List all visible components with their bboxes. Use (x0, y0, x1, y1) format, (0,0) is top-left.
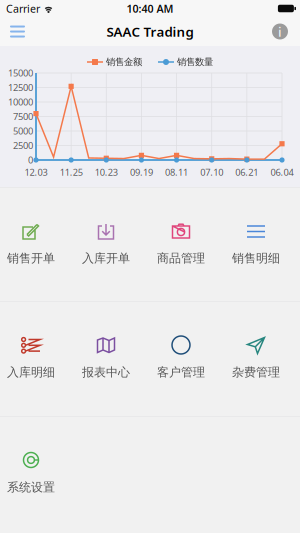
button[interactable]: Info (262, 18, 298, 44)
staticText: 10.23 (95, 166, 118, 178)
staticText: 07.10 (200, 166, 223, 178)
button[interactable]: 报表中心 (75, 301, 150, 416)
staticText: 入库明细 (7, 365, 55, 380)
staticText: SAAC Trading (106, 23, 193, 40)
staticText: 销售开单 (7, 251, 55, 266)
button[interactable]: Menu (2, 18, 33, 44)
button[interactable]: 销售开单 (0, 187, 75, 301)
button[interactable]: 系统设置 (0, 416, 75, 530)
staticText: 12.03 (24, 166, 47, 178)
staticText: 系统设置 (7, 480, 55, 495)
staticText: i (278, 23, 282, 40)
staticText: 客户管理 (157, 365, 205, 380)
button[interactable]: 商品管理 (150, 187, 225, 301)
button[interactable]: 销售明细 (225, 187, 300, 301)
button[interactable]: 入库明细 (0, 301, 75, 416)
staticText: 11.25 (60, 166, 83, 178)
staticText: 08.11 (165, 166, 188, 178)
staticText: 12500 (8, 81, 33, 94)
staticText: 销售明细 (232, 251, 280, 266)
staticText: 报表中心 (82, 365, 130, 380)
staticText: 2500 (13, 139, 33, 152)
staticText: 10000 (8, 96, 33, 108)
staticText: 5000 (13, 125, 33, 137)
staticText: 0 (28, 154, 33, 166)
staticText: 入库开单 (82, 251, 130, 266)
staticText: 7500 (13, 110, 33, 123)
staticText: 销售金额 (106, 56, 142, 68)
staticText: 15000 (8, 67, 33, 79)
button[interactable]: 客户管理 (150, 301, 225, 416)
button[interactable]: 入库开单 (75, 187, 150, 301)
button[interactable]: 杂费管理 (225, 301, 300, 416)
staticText: 06.04 (270, 166, 293, 178)
staticText: 10:40 AM (126, 1, 173, 16)
staticText: 商品管理 (157, 251, 205, 266)
staticText: 杂费管理 (232, 365, 280, 380)
staticText: 09.19 (130, 166, 153, 178)
staticText: 销售数量 (177, 56, 213, 68)
staticText: Carrier (6, 1, 40, 16)
staticText: 06.21 (235, 166, 258, 178)
